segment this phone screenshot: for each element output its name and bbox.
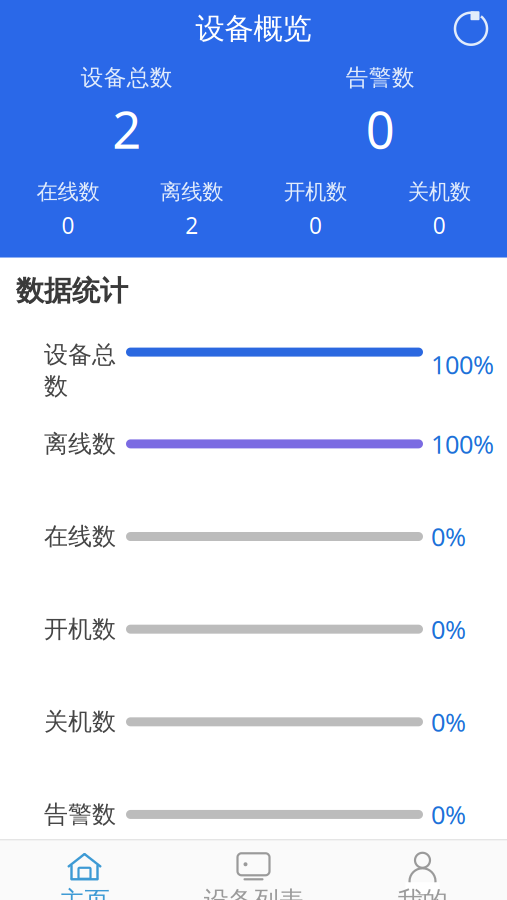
staticText: 离线数	[160, 179, 223, 205]
staticText: 数	[44, 372, 68, 401]
staticText: 在线数	[44, 522, 116, 551]
staticText: 100%	[431, 427, 494, 461]
staticText: 0	[366, 96, 395, 163]
staticText: 0%	[431, 705, 466, 739]
staticText: 设备列表	[203, 885, 303, 900]
staticText: 0	[309, 210, 322, 240]
staticText: 100%	[431, 348, 494, 381]
button[interactable]: 主页	[0, 846, 169, 900]
staticText: 数据统计	[16, 274, 128, 308]
button[interactable]: 设备列表	[169, 846, 338, 900]
staticText: 0	[433, 210, 446, 240]
button[interactable]: 我的	[338, 846, 507, 900]
staticText: 开机数	[284, 179, 347, 205]
staticText: 关机数	[408, 179, 471, 205]
staticText: 离线数	[44, 429, 116, 459]
staticText: 告警数	[44, 800, 116, 829]
staticText: 设备总数	[81, 64, 173, 91]
staticText: 设备概览	[195, 11, 311, 47]
staticText: 我的	[397, 885, 447, 900]
staticText: 0%	[431, 520, 466, 553]
staticText: 2	[112, 96, 141, 163]
staticText: 2	[185, 210, 198, 240]
staticText: 设备总	[44, 340, 116, 370]
staticText: 告警数	[346, 64, 415, 91]
staticText: 主页	[59, 885, 109, 900]
staticText: 在线数	[36, 179, 99, 205]
staticText: 0%	[431, 612, 466, 646]
staticText: 0	[61, 210, 74, 240]
staticText: 0%	[431, 798, 466, 831]
staticText: 开机数	[44, 614, 116, 644]
button[interactable]: Refresh	[453, 11, 489, 47]
staticText: 关机数	[44, 707, 116, 737]
